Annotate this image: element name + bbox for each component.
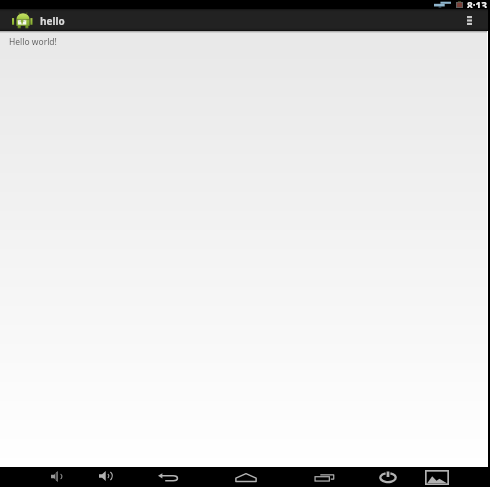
button[interactable]: More options bbox=[458, 9, 480, 31]
button[interactable]: Power bbox=[371, 467, 405, 487]
staticText: hello bbox=[40, 14, 65, 28]
staticText: Hello world! bbox=[9, 36, 57, 48]
button[interactable]: Volume up bbox=[89, 467, 123, 487]
staticText: 8:13 bbox=[467, 0, 487, 8]
button[interactable]: Recent apps bbox=[307, 467, 341, 487]
button[interactable]: Back bbox=[151, 467, 185, 487]
button[interactable]: Volume down bbox=[41, 467, 75, 487]
button[interactable]: Screenshot bbox=[420, 467, 454, 487]
button[interactable]: Home bbox=[229, 467, 263, 487]
